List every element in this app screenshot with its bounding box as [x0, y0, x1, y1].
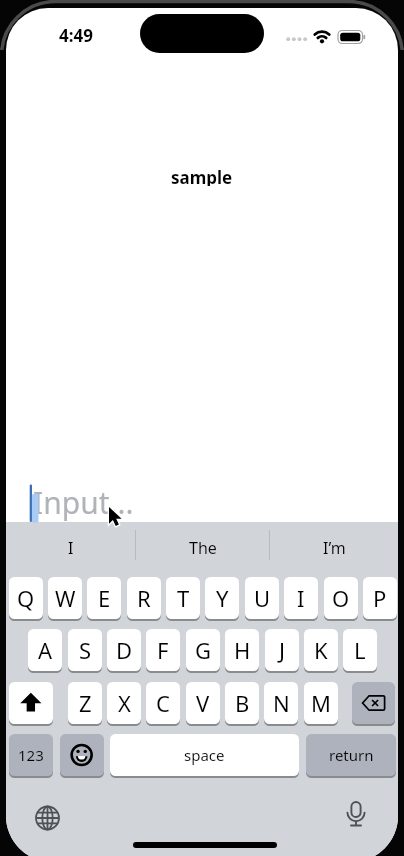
- staticText: B: [235, 688, 250, 718]
- staticText: R: [137, 583, 151, 613]
- button[interactable]: B: [225, 682, 259, 724]
- staticText: D: [116, 635, 133, 665]
- staticText: G: [195, 635, 212, 665]
- staticText: W: [55, 583, 76, 613]
- button[interactable]: A: [28, 629, 62, 671]
- button[interactable]: J: [265, 629, 299, 671]
- button[interactable]: [9, 682, 53, 724]
- button[interactable]: C: [146, 682, 180, 724]
- staticText: Input...: [33, 482, 134, 523]
- staticText: I: [68, 537, 74, 559]
- staticText: sample: [171, 166, 233, 186]
- staticText: V: [196, 688, 210, 718]
- staticText: O: [332, 583, 350, 613]
- button[interactable]: M: [304, 682, 338, 724]
- button[interactable]: F: [146, 629, 180, 671]
- staticText: I: [297, 583, 305, 613]
- button[interactable]: [6, 478, 398, 522]
- button[interactable]: [352, 682, 395, 724]
- button[interactable]: K: [304, 629, 338, 671]
- staticText: Y: [216, 583, 229, 613]
- staticText: The: [189, 537, 217, 559]
- staticText: L: [354, 635, 366, 665]
- button[interactable]: R: [127, 577, 161, 619]
- staticText: M: [311, 688, 331, 718]
- staticText: Q: [17, 583, 35, 613]
- button[interactable]: [32, 802, 64, 834]
- staticText: C: [156, 688, 170, 718]
- button[interactable]: The: [136, 528, 270, 568]
- staticText: U: [254, 583, 271, 613]
- button[interactable]: T: [166, 577, 200, 619]
- button[interactable]: [60, 734, 104, 776]
- button[interactable]: I: [284, 577, 318, 619]
- staticText: Z: [79, 688, 92, 718]
- button[interactable]: Y: [205, 577, 239, 619]
- staticText: J: [279, 635, 286, 665]
- staticText: E: [98, 583, 111, 613]
- staticText: N: [273, 688, 290, 718]
- staticText: F: [157, 635, 169, 665]
- staticText: S: [79, 635, 92, 665]
- button[interactable]: space: [110, 734, 299, 776]
- button[interactable]: G: [186, 629, 220, 671]
- button[interactable]: H: [225, 629, 259, 671]
- button[interactable]: return: [306, 734, 396, 776]
- button[interactable]: Q: [9, 577, 43, 619]
- button[interactable]: E: [87, 577, 121, 619]
- button[interactable]: P: [363, 577, 397, 619]
- button[interactable]: N: [264, 682, 298, 724]
- button[interactable]: V: [186, 682, 220, 724]
- button[interactable]: [340, 801, 372, 833]
- button[interactable]: D: [107, 629, 141, 671]
- staticText: return: [329, 745, 374, 765]
- staticText: X: [118, 688, 131, 718]
- button[interactable]: X: [107, 682, 141, 724]
- staticText: 123: [18, 745, 44, 765]
- staticText: A: [38, 635, 53, 665]
- button[interactable]: O: [324, 577, 358, 619]
- button[interactable]: I: [6, 528, 136, 568]
- staticText: space: [184, 745, 225, 765]
- staticText: T: [177, 583, 190, 613]
- button[interactable]: S: [68, 629, 102, 671]
- button[interactable]: L: [343, 629, 377, 671]
- button[interactable]: I’m: [270, 528, 398, 568]
- staticText: P: [373, 583, 387, 613]
- button[interactable]: Z: [68, 682, 102, 724]
- button[interactable]: W: [48, 577, 82, 619]
- button[interactable]: U: [245, 577, 279, 619]
- staticText: 4:49: [59, 24, 93, 47]
- staticText: I’m: [323, 537, 346, 559]
- staticText: K: [314, 635, 328, 665]
- button[interactable]: 123: [9, 734, 53, 776]
- staticText: H: [234, 635, 251, 665]
